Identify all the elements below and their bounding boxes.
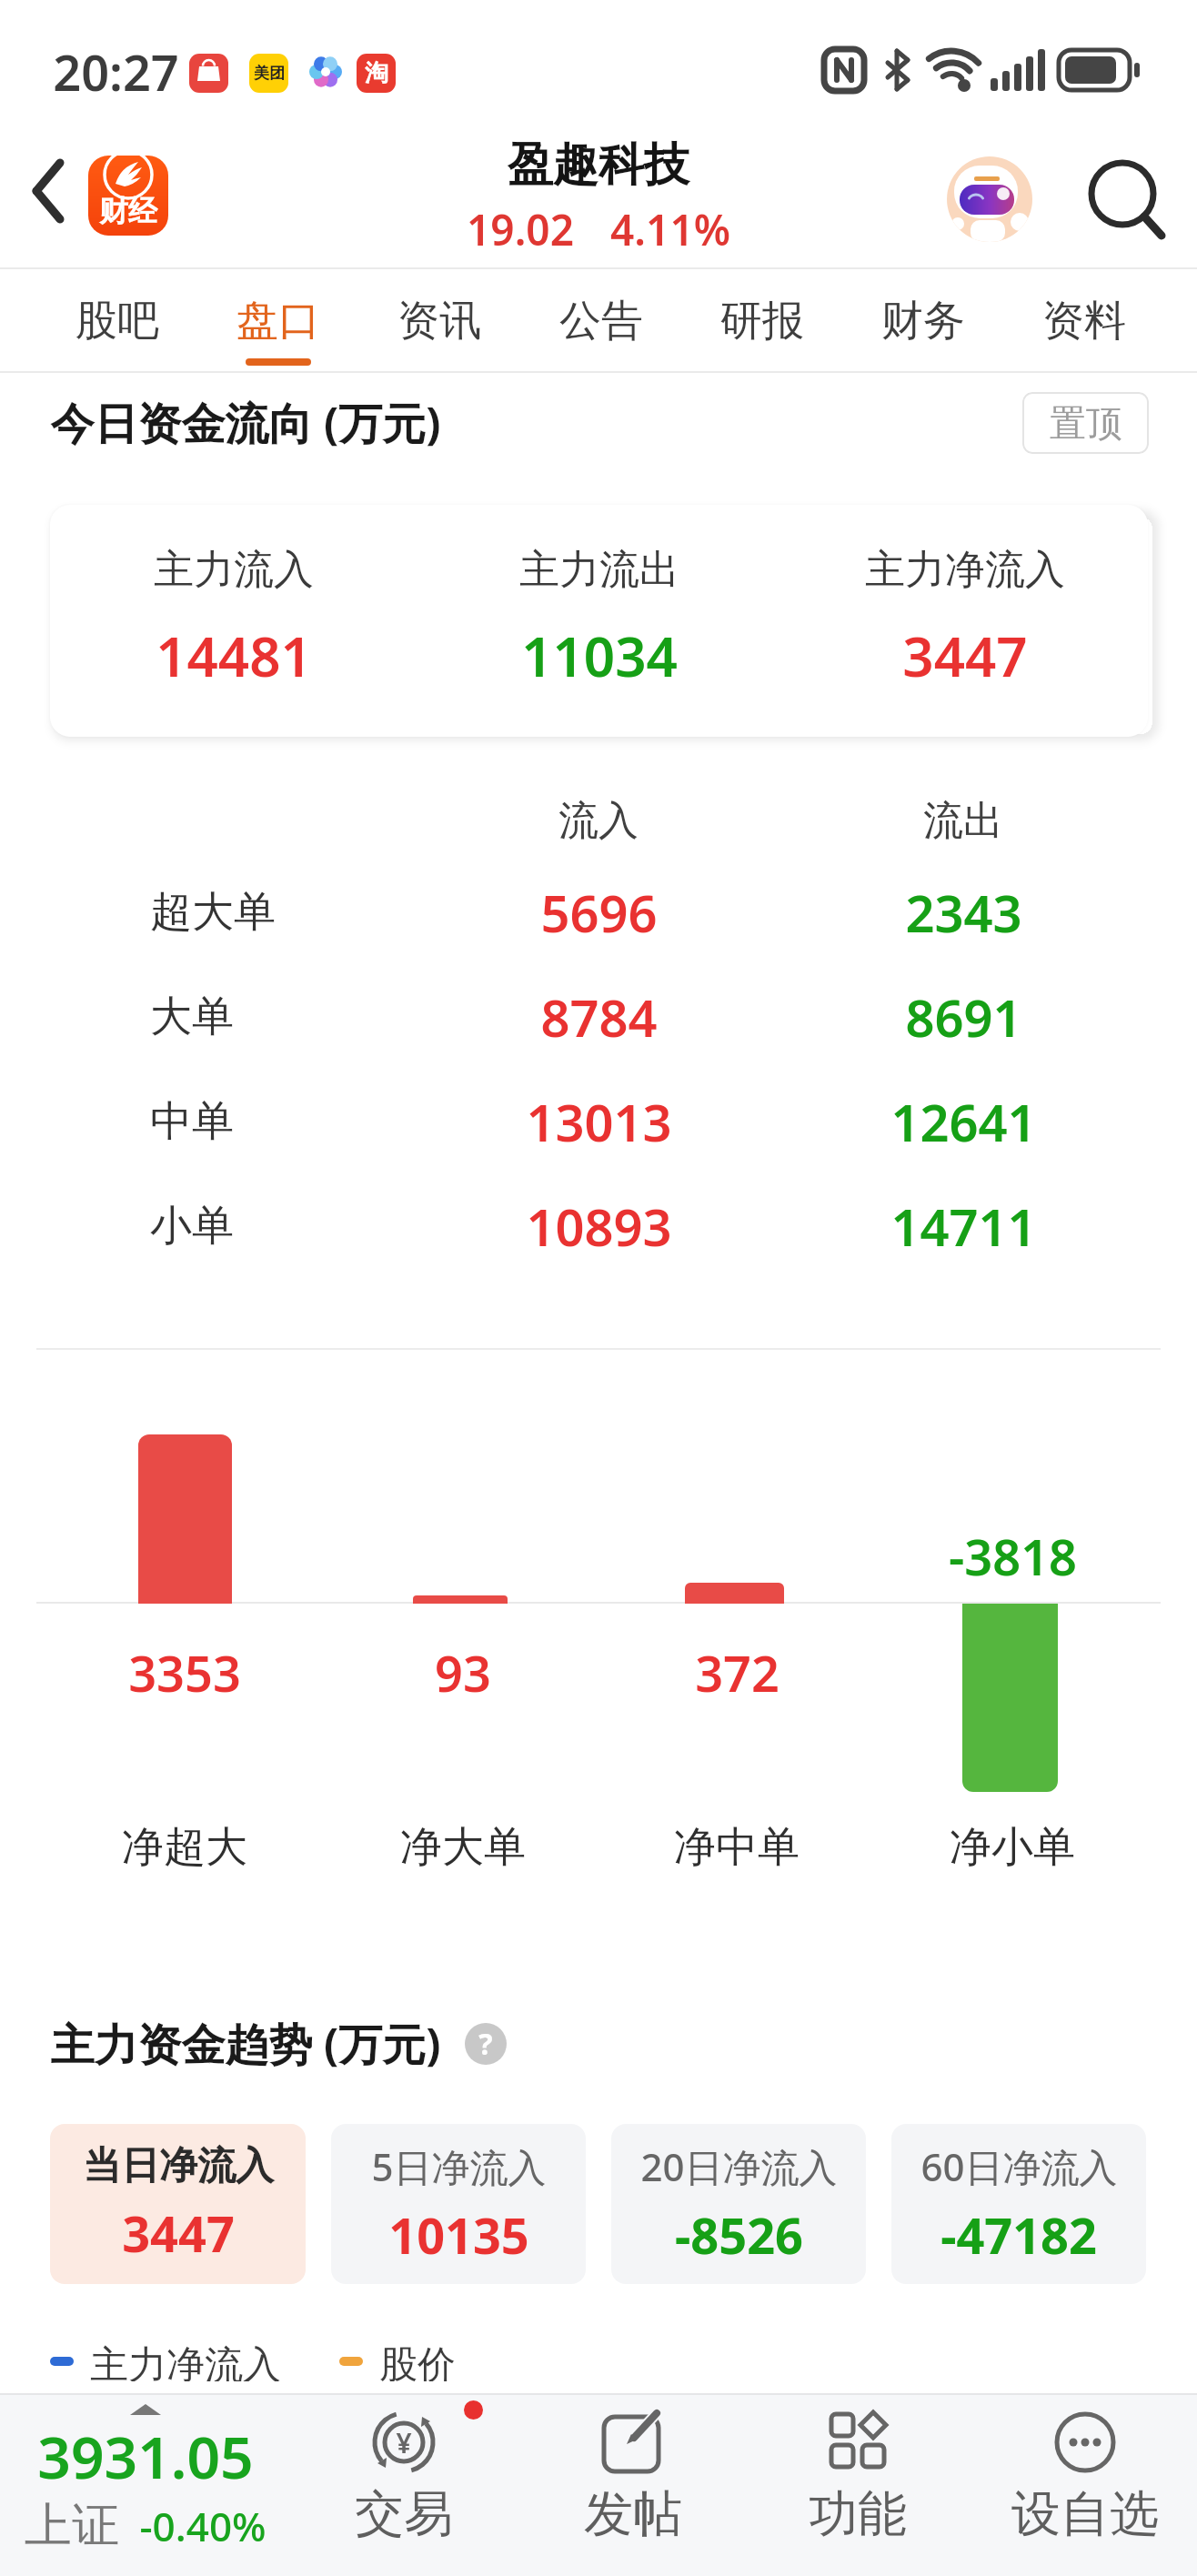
button[interactable]: 置顶 xyxy=(1022,392,1149,454)
button[interactable]: 资讯 xyxy=(397,269,481,373)
staticText: 净小单 xyxy=(950,1821,1075,1874)
staticText: ¥ xyxy=(396,2424,412,2461)
staticText: 372 xyxy=(695,1639,780,1706)
staticText: 股价 xyxy=(379,2341,456,2381)
button[interactable] xyxy=(1073,155,1173,246)
staticText: 净大单 xyxy=(400,1821,526,1874)
staticText: 财务 xyxy=(881,295,965,347)
staticText: 19.02 xyxy=(467,201,574,258)
staticText: 60日净流入 xyxy=(920,2140,1118,2192)
button[interactable]: 3931.05 xyxy=(18,2395,273,2556)
staticText: 主力净流入 xyxy=(865,545,1065,595)
button[interactable]: 60日净流入 xyxy=(891,2124,1146,2284)
staticText: 今日资金流向 (万元) xyxy=(50,393,441,453)
button[interactable]: 研报 xyxy=(720,269,804,373)
button[interactable]: 资料 xyxy=(1042,269,1126,373)
button[interactable]: 股吧 xyxy=(75,269,159,373)
staticText: -0.40% xyxy=(139,2499,267,2553)
button[interactable]: 公告 xyxy=(559,269,643,373)
staticText: 流出 xyxy=(923,796,1003,846)
staticText: 美团 xyxy=(254,64,285,83)
staticText: 净中单 xyxy=(674,1821,800,1874)
button[interactable]: 盘口 xyxy=(236,269,320,373)
staticText: 资料 xyxy=(1042,295,1126,347)
staticText: 股吧 xyxy=(75,295,159,347)
button[interactable]: 当日净流入 xyxy=(50,2124,306,2284)
staticText: 盘口 xyxy=(236,295,320,347)
staticText: 上证 xyxy=(25,2496,119,2556)
button[interactable]: 财经 xyxy=(88,156,168,236)
staticText: 11034 xyxy=(521,619,678,693)
staticText: 93 xyxy=(435,1639,491,1706)
button[interactable]: 5日净流入 xyxy=(331,2124,586,2284)
staticText: 超大单 xyxy=(150,886,276,939)
staticText: 3447 xyxy=(122,2199,235,2267)
staticText: 大单 xyxy=(150,991,234,1043)
button[interactable]: 功能 xyxy=(767,2395,949,2576)
staticText: 4.11% xyxy=(610,201,730,258)
staticText: 财经 xyxy=(99,193,157,229)
staticText: 5日净流入 xyxy=(371,2140,547,2192)
staticText: 交易 xyxy=(355,2483,453,2545)
staticText: 14711 xyxy=(890,1192,1037,1261)
staticText: 12641 xyxy=(890,1087,1037,1156)
staticText: 20日净流入 xyxy=(640,2140,838,2192)
staticText: 研报 xyxy=(720,295,804,347)
button[interactable]: 设自选 xyxy=(985,2395,1185,2576)
staticText: 流入 xyxy=(558,796,639,846)
staticText: 公告 xyxy=(559,295,643,347)
staticText: 置顶 xyxy=(1050,400,1122,446)
staticText: 13013 xyxy=(526,1087,672,1156)
staticText: 3353 xyxy=(128,1639,241,1706)
staticText: 3931.05 xyxy=(37,2417,254,2496)
staticText: 3447 xyxy=(902,619,1028,693)
staticText: 淘 xyxy=(365,58,388,88)
staticText: 主力流入 xyxy=(154,545,314,595)
button[interactable]: 主力流入 xyxy=(50,505,1148,737)
button[interactable] xyxy=(18,155,82,246)
staticText: -8526 xyxy=(675,2201,803,2269)
staticText: 设自选 xyxy=(1011,2483,1159,2545)
staticText: 8691 xyxy=(905,982,1022,1052)
staticText: 2343 xyxy=(905,878,1022,947)
staticText: 资讯 xyxy=(397,295,481,347)
staticText: 10135 xyxy=(388,2201,529,2269)
staticText: 主力净流入 xyxy=(90,2341,281,2381)
staticText: 净超大 xyxy=(122,1821,247,1874)
staticText: 主力流出 xyxy=(519,545,679,595)
staticText: 10893 xyxy=(526,1192,672,1261)
button[interactable]: 20日净流入 xyxy=(611,2124,866,2284)
staticText: 5696 xyxy=(540,878,658,947)
staticText: 当日净流入 xyxy=(83,2142,274,2190)
button[interactable]: 发帖 xyxy=(542,2395,724,2576)
staticText: 14481 xyxy=(156,619,312,693)
staticText: -47182 xyxy=(940,2201,1097,2269)
staticText: 盈趣科技 xyxy=(508,136,689,194)
staticText: 功能 xyxy=(809,2483,907,2545)
button[interactable]: ¥ xyxy=(313,2395,495,2576)
staticText: 8784 xyxy=(540,982,658,1052)
button[interactable]: 财务 xyxy=(881,269,965,373)
staticText: 主力资金趋势 (万元) xyxy=(50,2014,441,2074)
staticText: -3818 xyxy=(949,1523,1077,1590)
staticText: 20:27 xyxy=(53,38,179,106)
button[interactable] xyxy=(947,156,1032,242)
staticText: 中单 xyxy=(150,1095,234,1148)
staticText: 小单 xyxy=(150,1200,234,1253)
staticText: ? xyxy=(478,2024,493,2064)
button[interactable]: ? xyxy=(465,2023,507,2065)
staticText: 发帖 xyxy=(584,2483,682,2545)
